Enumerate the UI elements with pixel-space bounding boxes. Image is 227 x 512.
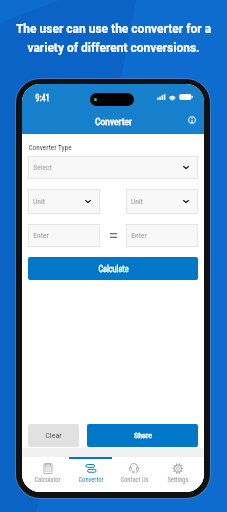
button[interactable]: Unit bbox=[126, 189, 198, 214]
staticText: Settings bbox=[167, 476, 189, 484]
button[interactable]: Share bbox=[87, 424, 198, 447]
staticText: Unit bbox=[33, 197, 45, 206]
staticText: Contact Us bbox=[120, 476, 149, 484]
staticText: Clear bbox=[45, 431, 62, 440]
button[interactable]: Clear bbox=[28, 424, 79, 447]
staticText: Converter bbox=[95, 116, 132, 127]
staticText: Unit bbox=[131, 197, 143, 206]
staticText: Enter bbox=[33, 231, 49, 240]
button[interactable]: Settings bbox=[156, 457, 200, 492]
staticText: Calculator bbox=[34, 476, 61, 484]
button[interactable]: Calculator bbox=[26, 457, 69, 492]
button[interactable]: Select bbox=[28, 156, 198, 179]
button[interactable]: Contact Us bbox=[112, 457, 156, 492]
staticText: Enter bbox=[131, 231, 147, 240]
staticText: The user can use the converter for a var… bbox=[0, 22, 227, 55]
button[interactable]: Enter bbox=[126, 224, 198, 247]
staticText: Select bbox=[33, 163, 52, 172]
staticText: Share bbox=[134, 431, 152, 440]
button[interactable]: Calculate bbox=[28, 257, 198, 280]
staticText: Converter Type bbox=[28, 143, 72, 152]
button[interactable]: Info bbox=[185, 113, 199, 127]
staticText: Convertor bbox=[78, 476, 104, 484]
staticText: Calculate bbox=[98, 264, 129, 274]
staticText: 9:41 bbox=[35, 93, 50, 103]
button[interactable]: Convertor bbox=[69, 457, 112, 492]
button[interactable]: Enter bbox=[28, 224, 100, 247]
button[interactable]: Unit bbox=[28, 189, 100, 214]
